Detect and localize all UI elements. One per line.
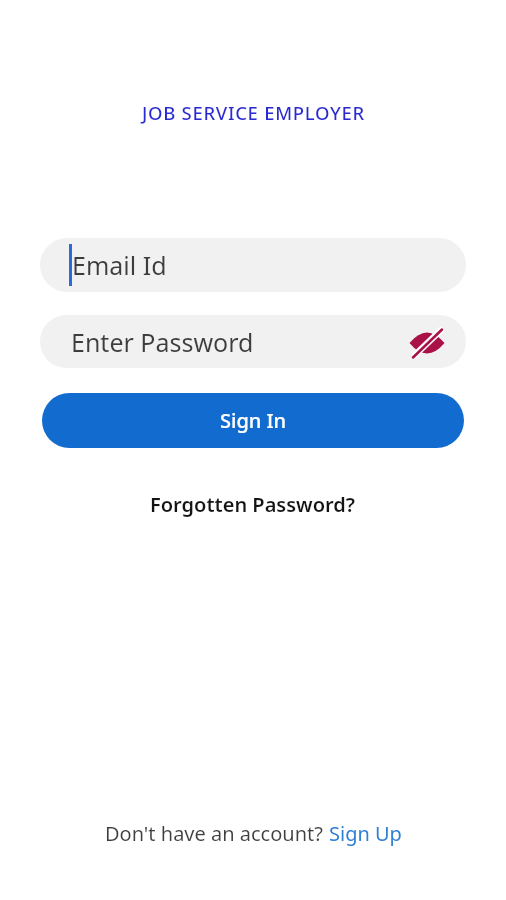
- staticText: JOB SERVICE EMPLOYER: [142, 100, 365, 125]
- button[interactable]: Sign Up: [329, 820, 402, 847]
- staticText: Enter Password: [71, 325, 254, 359]
- staticText: Don't have an account?: [105, 820, 329, 847]
- button[interactable]: Enter Password: [40, 315, 466, 368]
- button[interactable]: Email Id: [40, 238, 466, 292]
- button[interactable]: Sign In: [42, 393, 464, 448]
- staticText: Email Id: [72, 248, 167, 282]
- staticText: Sign In: [220, 407, 287, 434]
- button[interactable]: Forgotten Password?: [150, 491, 356, 518]
